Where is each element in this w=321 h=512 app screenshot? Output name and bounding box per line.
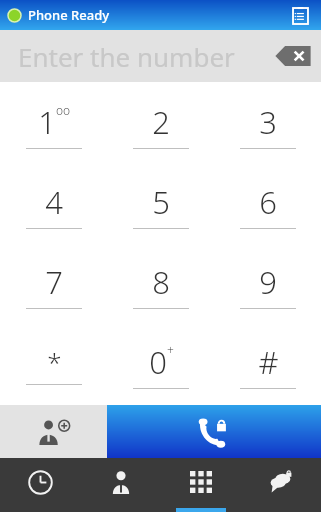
staticText: # — [258, 341, 279, 383]
staticText: 1 — [38, 101, 56, 143]
staticText: 9 — [259, 261, 277, 303]
button[interactable]: 8 — [107, 245, 214, 325]
staticText: 6 — [259, 181, 277, 223]
button[interactable]: Dialpad — [161, 458, 241, 512]
staticText: Phone Ready — [28, 6, 110, 24]
button[interactable]: 7 — [0, 245, 107, 325]
button[interactable]: 0 — [107, 325, 214, 405]
button[interactable]: Call log — [287, 2, 313, 28]
button[interactable]: Backspace — [273, 42, 313, 70]
staticText: * — [47, 344, 62, 379]
staticText: 0 — [149, 341, 167, 383]
button[interactable]: Contacts — [81, 458, 161, 512]
button[interactable]: Enter the number — [0, 30, 321, 82]
button[interactable]: 6 — [214, 165, 321, 245]
staticText: 8 — [152, 261, 170, 303]
staticText: Enter the number — [18, 39, 235, 74]
button[interactable]: Secure call — [107, 405, 321, 458]
button[interactable]: # — [214, 325, 321, 405]
button[interactable]: 1 — [0, 86, 107, 165]
staticText: 2 — [152, 101, 170, 143]
button[interactable]: Recent calls — [0, 458, 81, 512]
button[interactable]: 4 — [0, 165, 107, 245]
staticText: 4 — [45, 181, 63, 223]
button[interactable]: * — [0, 325, 107, 405]
staticText: 5 — [152, 181, 170, 223]
button[interactable]: Add contact — [0, 405, 107, 458]
staticText: oo — [56, 102, 71, 118]
button[interactable]: 5 — [107, 165, 214, 245]
button[interactable]: Messages — [241, 458, 321, 512]
button[interactable]: 3 — [214, 86, 321, 165]
button[interactable]: 2 — [107, 86, 214, 165]
staticText: 7 — [45, 261, 63, 303]
staticText: 3 — [259, 101, 277, 143]
staticText: + — [167, 342, 174, 358]
button[interactable]: 9 — [214, 245, 321, 325]
